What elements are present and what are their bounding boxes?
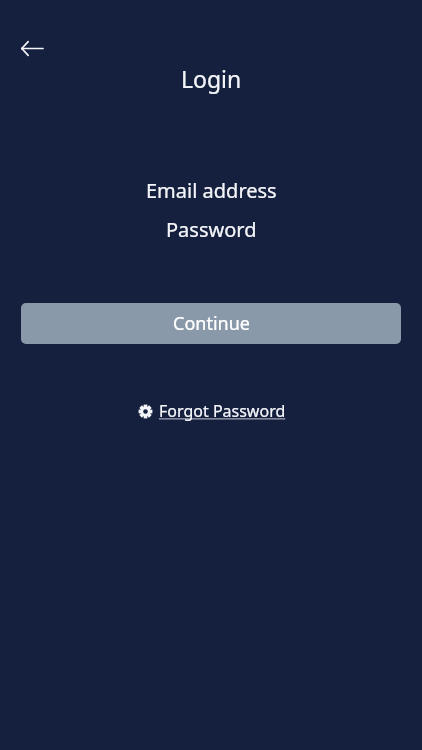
button[interactable] xyxy=(10,26,54,70)
button[interactable]: Continue xyxy=(21,303,401,344)
button[interactable]: Forgot Password xyxy=(137,400,286,422)
button[interactable]: Email address xyxy=(41,173,381,207)
staticText: Password xyxy=(166,216,257,243)
staticText: Continue xyxy=(173,311,250,336)
button[interactable]: Password xyxy=(41,212,381,246)
staticText: Login xyxy=(181,63,242,94)
staticText: Email address xyxy=(146,177,277,204)
staticText: Forgot Password xyxy=(159,400,286,422)
